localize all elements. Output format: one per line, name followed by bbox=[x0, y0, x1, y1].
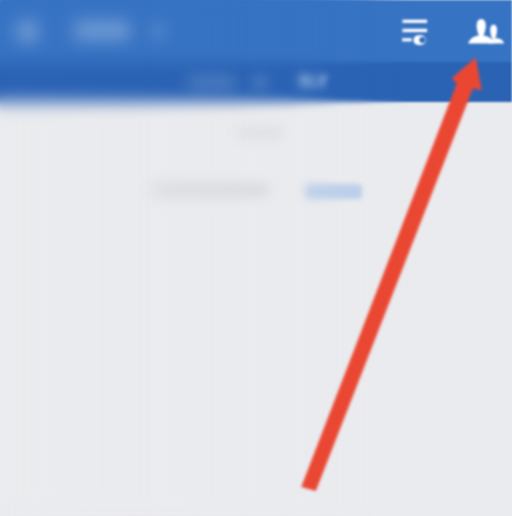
button[interactable]: Filter bbox=[388, 5, 440, 57]
button[interactable]: Filter bbox=[388, 5, 440, 57]
button[interactable]: Back bbox=[17, 21, 38, 42]
button[interactable]: Contacts bbox=[456, 5, 508, 57]
staticText: 刚才 bbox=[299, 72, 329, 91]
button[interactable] bbox=[74, 21, 130, 40]
button[interactable]: Back bbox=[17, 21, 38, 42]
button[interactable]: Back bbox=[17, 21, 38, 42]
staticText: 刚才 bbox=[299, 72, 329, 91]
button[interactable]: Filter bbox=[388, 5, 440, 57]
button[interactable]: Contacts bbox=[456, 5, 508, 57]
button[interactable] bbox=[305, 184, 362, 199]
staticText: 刚才 bbox=[299, 72, 329, 91]
button[interactable]: Back bbox=[17, 21, 38, 42]
button[interactable] bbox=[305, 184, 362, 199]
button[interactable]: Contacts bbox=[456, 5, 508, 57]
button[interactable]: Contacts bbox=[456, 5, 508, 57]
button[interactable]: Filter bbox=[388, 5, 440, 57]
button[interactable] bbox=[188, 77, 235, 88]
button[interactable] bbox=[74, 21, 130, 40]
button[interactable]: Filter bbox=[388, 5, 440, 57]
button[interactable] bbox=[305, 184, 362, 199]
button[interactable] bbox=[74, 21, 130, 40]
button[interactable]: Contacts bbox=[456, 5, 508, 57]
button[interactable] bbox=[188, 77, 235, 88]
staticText: 刚才 bbox=[299, 72, 329, 91]
button[interactable] bbox=[188, 77, 235, 88]
button[interactable]: Back bbox=[17, 21, 38, 42]
staticText: 刚才 bbox=[299, 72, 329, 91]
button[interactable] bbox=[188, 77, 235, 88]
button[interactable] bbox=[74, 21, 130, 40]
button[interactable]: Back bbox=[17, 21, 38, 42]
button[interactable] bbox=[188, 77, 235, 88]
button[interactable]: Filter bbox=[388, 5, 440, 57]
button[interactable]: Contacts bbox=[456, 5, 508, 57]
button[interactable]: Back bbox=[17, 21, 38, 42]
button[interactable] bbox=[74, 21, 130, 40]
button[interactable] bbox=[188, 77, 235, 88]
button[interactable] bbox=[74, 21, 130, 40]
button[interactable]: Filter bbox=[388, 5, 440, 57]
button[interactable] bbox=[305, 184, 362, 199]
button[interactable] bbox=[305, 184, 362, 199]
button[interactable] bbox=[305, 184, 362, 199]
button[interactable]: Contacts bbox=[456, 5, 508, 57]
staticText: 刚才 bbox=[299, 72, 329, 91]
button[interactable] bbox=[188, 77, 235, 88]
button[interactable] bbox=[74, 21, 130, 40]
staticText: 刚才 bbox=[299, 72, 329, 91]
button[interactable] bbox=[305, 184, 362, 199]
